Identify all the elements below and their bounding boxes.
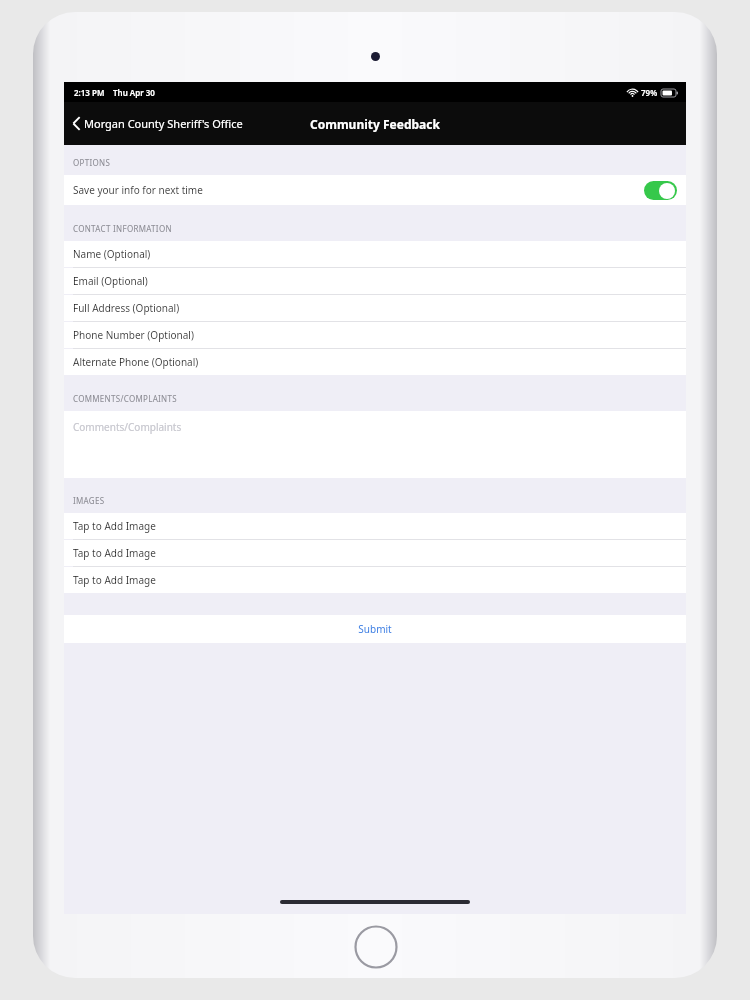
button[interactable]: Email (Optional) [64,268,686,295]
staticText: IMAGES [73,495,105,506]
staticText: Tap to Add Image [73,546,156,560]
button[interactable]: Full Address (Optional) [64,295,686,322]
staticText: Name (Optional) [73,247,151,261]
staticText: 2:13 PM [74,87,105,98]
staticText: Tap to Add Image [73,519,156,533]
staticText: Alternate Phone (Optional) [73,355,199,369]
staticText: COMMENTS/COMPLAINTS [73,393,177,404]
button[interactable]: Tap to Add Image [64,567,686,593]
staticText: Thu Apr 30 [113,87,155,98]
staticText: CONTACT INFORMATION [73,223,172,234]
staticText: 79% [641,87,658,98]
staticText: Email (Optional) [73,274,148,288]
staticText: Full Address (Optional) [73,301,180,315]
button[interactable]: Submit [64,615,686,643]
button[interactable]: Tap to Add Image [64,513,686,540]
button[interactable]: Alternate Phone (Optional) [64,349,686,375]
button[interactable]: Comments/Complaints [64,411,686,478]
staticText: Save your info for next time [73,183,644,197]
button[interactable]: Tap to Add Image [64,540,686,567]
button[interactable]: Morgan County Sheriff's Office [64,110,251,137]
staticText: Tap to Add Image [73,573,156,587]
button[interactable]: Save your info for next time [64,175,686,205]
staticText: OPTIONS [73,157,111,168]
staticText: Comments/Complaints [73,420,182,434]
staticText: Submit [358,622,392,636]
button[interactable]: Phone Number (Optional) [64,322,686,349]
button[interactable]: Name (Optional) [64,241,686,268]
staticText: Phone Number (Optional) [73,328,194,342]
staticText: Morgan County Sheriff's Office [84,116,243,131]
staticText: Community Feedback [310,116,440,132]
